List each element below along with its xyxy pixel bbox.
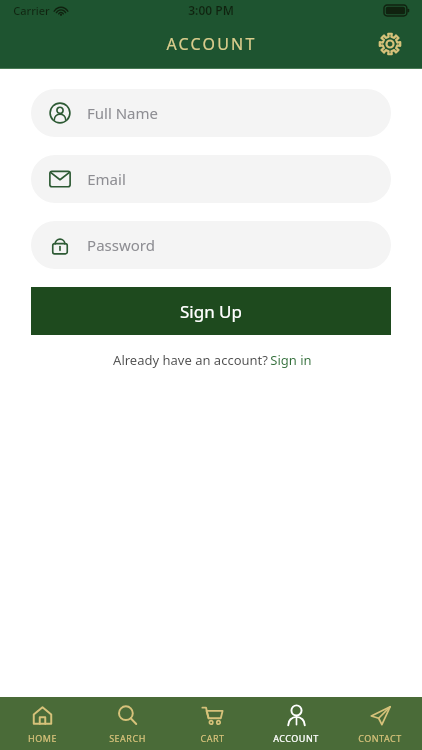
staticText: Sign Up — [180, 300, 242, 323]
staticText: Sign in — [270, 351, 312, 369]
button[interactable]: HOME — [0, 697, 85, 750]
button[interactable]: Full Name — [31, 89, 391, 137]
button[interactable]: Sign in — [270, 351, 312, 369]
staticText: Carrier — [13, 3, 50, 18]
button[interactable]: Email — [31, 155, 391, 203]
button[interactable]: Sign Up — [31, 287, 391, 335]
staticText: HOME — [28, 732, 57, 744]
staticText: CONTACT — [358, 732, 402, 744]
staticText: ACCOUNT — [166, 33, 257, 55]
staticText: Password — [87, 235, 155, 255]
button[interactable]: CONTACT — [338, 697, 422, 750]
button[interactable]: SEARCH — [85, 697, 170, 750]
button[interactable]: CART — [170, 697, 254, 750]
staticText: SEARCH — [109, 732, 146, 744]
staticText: Email — [87, 169, 126, 189]
staticText: Already have an account? — [111, 351, 270, 369]
button[interactable]: ACCOUNT — [254, 697, 338, 750]
staticText: CART — [200, 732, 225, 744]
button[interactable]: Settings — [370, 24, 410, 64]
button[interactable]: Password — [31, 221, 391, 269]
staticText: Full Name — [87, 103, 158, 123]
staticText: 3:00 PM — [188, 2, 234, 18]
staticText: ACCOUNT — [273, 732, 319, 744]
